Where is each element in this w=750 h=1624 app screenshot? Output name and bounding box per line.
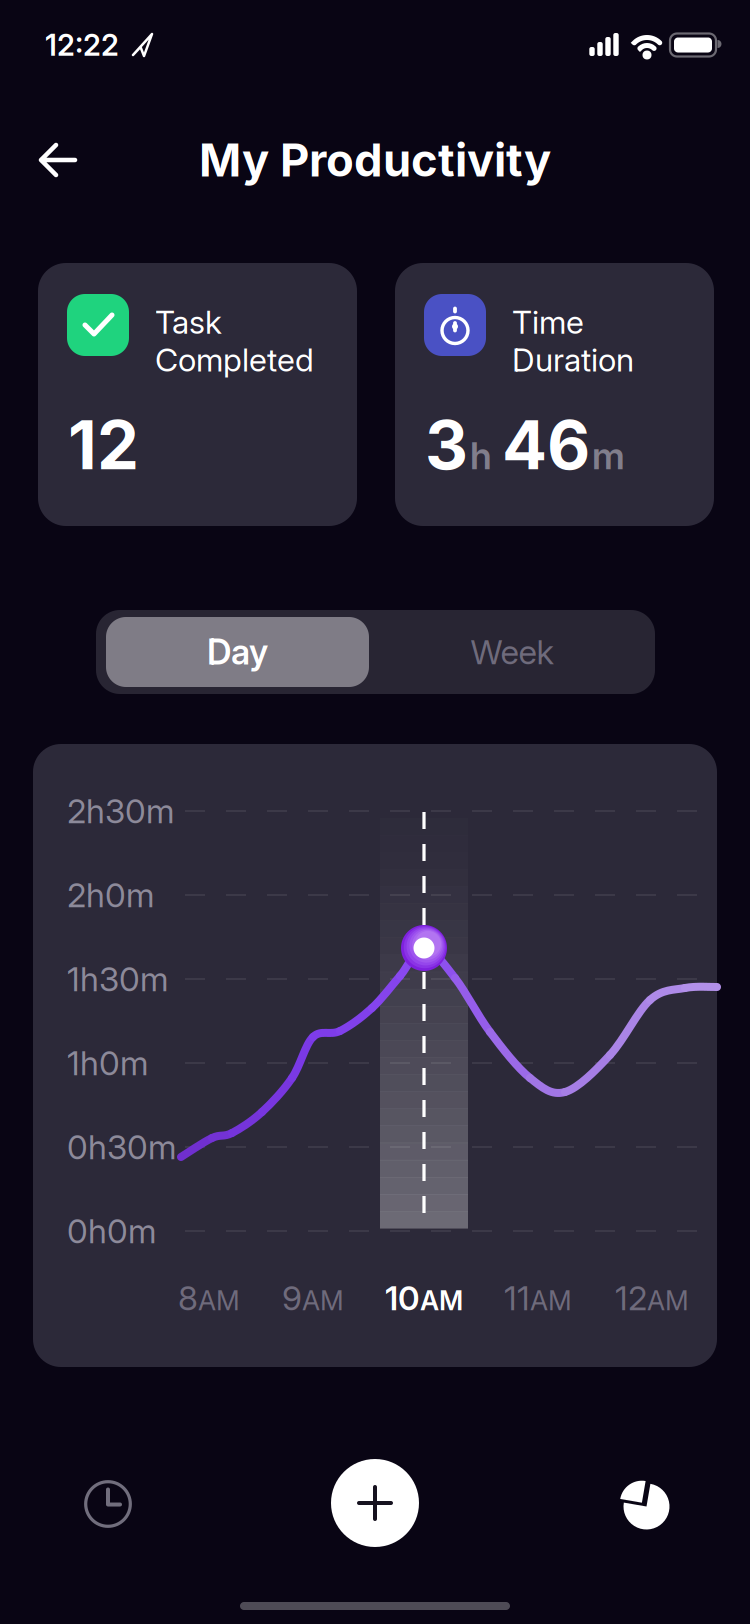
staticText: 12AM [615, 1278, 689, 1318]
staticText: Week [470, 632, 553, 672]
staticText: Day [207, 632, 268, 672]
button[interactable]: Add [331, 1459, 419, 1547]
staticText: 11AM [504, 1278, 572, 1318]
staticText: 1h30m [67, 959, 168, 999]
button[interactable]: History [84, 1480, 132, 1528]
staticText: 9AM [282, 1278, 344, 1318]
staticText: Time Duration [512, 303, 634, 379]
button[interactable]: Day [106, 617, 369, 687]
staticText: 46 [502, 406, 590, 484]
staticText: 2h0m [67, 875, 154, 915]
staticText: 3 [425, 406, 468, 484]
staticText: 10AM [385, 1278, 463, 1318]
button[interactable]: Week [380, 617, 643, 687]
staticText: Task Completed [155, 303, 314, 379]
staticText: m [592, 434, 625, 478]
staticText: 1h0m [67, 1043, 148, 1083]
staticText: 12 [68, 406, 139, 484]
staticText: 0h30m [67, 1127, 176, 1167]
staticText: 0h0m [67, 1211, 156, 1251]
staticText: 8AM [178, 1278, 240, 1318]
staticText: 2h30m [67, 791, 174, 831]
staticText: My Productivity [199, 133, 551, 187]
staticText: 12:22 [45, 28, 119, 62]
button[interactable]: Back [39, 142, 79, 178]
button[interactable]: Statistics [616, 1476, 670, 1530]
staticText: h [470, 434, 492, 478]
